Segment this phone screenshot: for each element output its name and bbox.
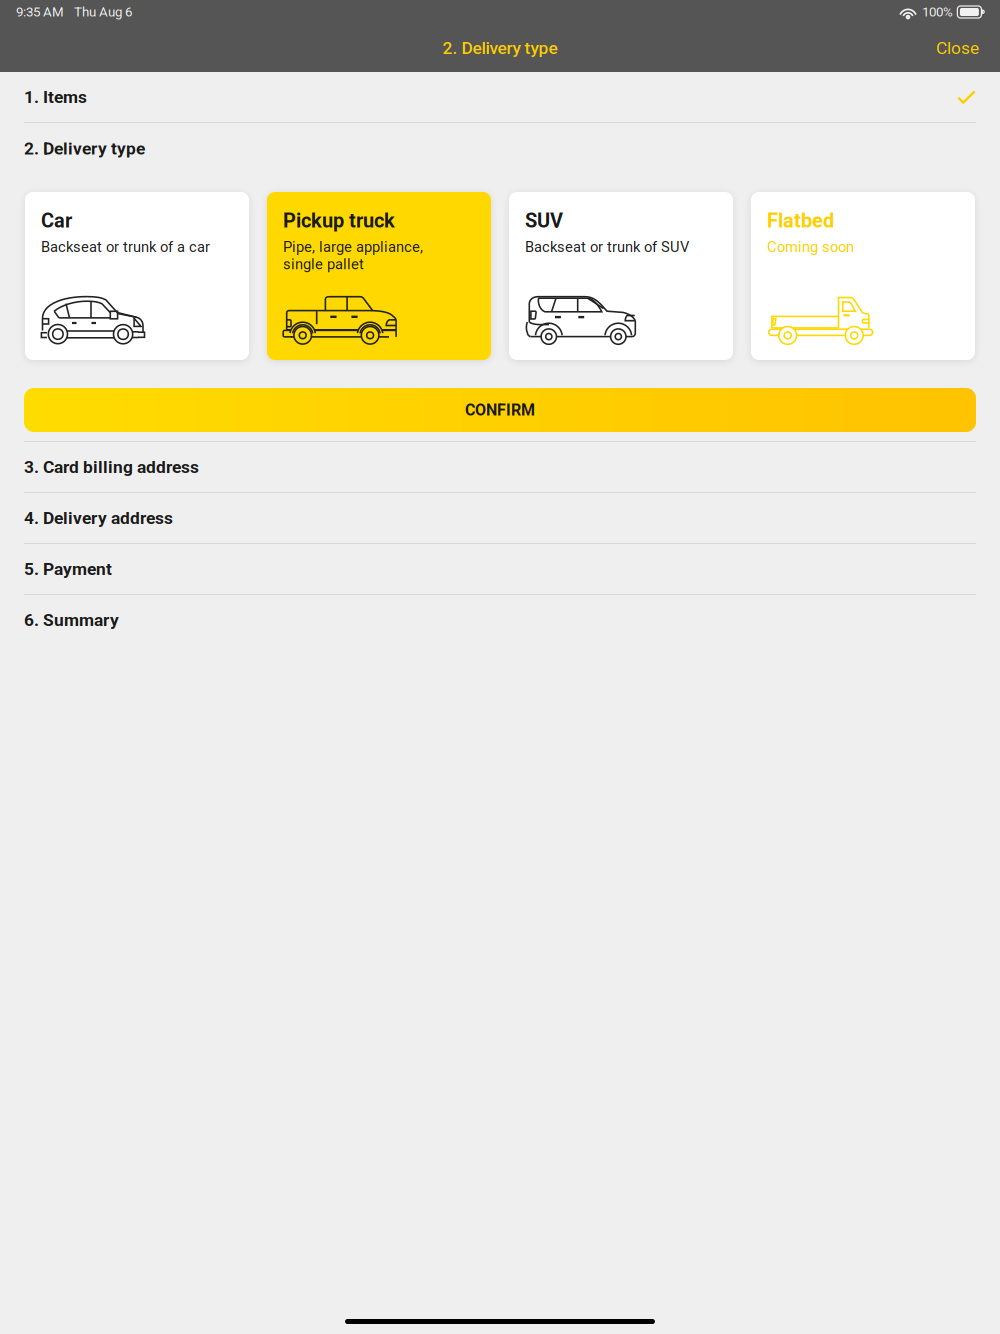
staticText: SUV	[525, 209, 563, 232]
button[interactable]: Flatbed	[751, 192, 975, 360]
staticText: 5. Payment	[24, 559, 112, 579]
button[interactable]: CONFIRM	[0, 388, 1000, 432]
button[interactable]: SUV	[509, 192, 733, 360]
staticText: 6. Summary	[24, 610, 119, 630]
staticText: Pickup truck	[283, 209, 395, 232]
staticText: 2. Delivery type	[24, 138, 145, 159]
button[interactable]: Car	[25, 192, 249, 360]
staticText: 3. Card billing address	[24, 457, 199, 477]
staticText: CONFIRM	[465, 401, 535, 419]
staticText: 100%	[922, 4, 953, 20]
button[interactable]: 5. Payment	[0, 544, 1000, 595]
button[interactable]: 3. Card billing address	[0, 442, 1000, 493]
staticText: 1. Items	[24, 87, 87, 107]
staticText: Close	[936, 38, 979, 58]
button[interactable]: 4. Delivery address	[0, 493, 1000, 544]
button[interactable]: 1. Items	[0, 72, 1000, 123]
staticText: 9:35 AM	[16, 4, 64, 20]
button[interactable]: Pickup truck	[267, 192, 491, 360]
button[interactable]: 6. Summary	[0, 595, 1000, 646]
staticText: Thu Aug 6	[74, 4, 132, 20]
button[interactable]: Close	[915, 28, 1000, 68]
staticText: Backseat or trunk of a car	[41, 238, 210, 256]
staticText: Coming soon	[767, 238, 854, 256]
staticText: Backseat or trunk of SUV	[525, 238, 689, 256]
staticText: Flatbed	[767, 209, 834, 232]
staticText: Pipe, large appliance, single pallet	[283, 238, 423, 273]
staticText: Car	[41, 209, 72, 232]
staticText: 2. Delivery type	[442, 38, 557, 58]
staticText: 4. Delivery address	[24, 508, 173, 528]
